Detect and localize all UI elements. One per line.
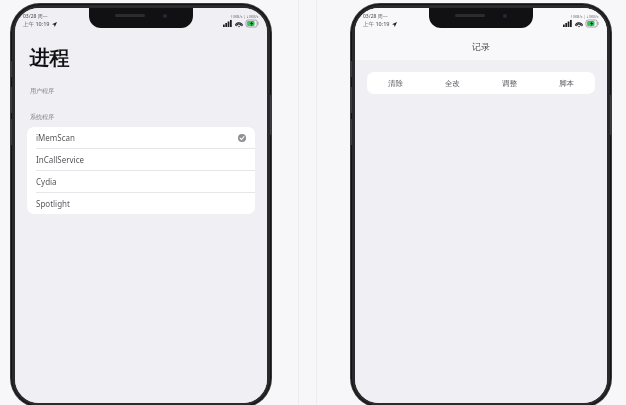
staticText: iMemScan [36,132,238,143]
staticText: 记录 [472,41,490,52]
staticText: 系统程序 [30,113,54,121]
staticText: 上午 10:19 [23,20,50,28]
button[interactable]: 脚本 [538,72,595,94]
staticText: 进程 [29,46,69,71]
staticText: Spotlight [36,198,246,209]
staticText: 03/28 周一 [363,13,388,20]
staticText: 全改 [445,79,460,88]
button[interactable]: 调整 [481,72,538,94]
staticText: ↑0KB/s | ↓0KB/s [570,14,599,19]
staticText: 用户程序 [30,87,54,95]
staticText: ↑0KB/s | ↓0KB/s [230,14,259,19]
staticText: 清除 [388,79,403,88]
button[interactable]: 清除 [367,72,424,94]
button[interactable]: Spotlight [27,193,255,214]
staticText: 上午 10:19 [363,20,390,28]
button[interactable]: 全改 [424,72,481,94]
button[interactable]: Cydia [27,171,255,193]
staticText: 03/28 周一 [23,13,48,20]
button[interactable]: InCallService [27,149,255,171]
staticText: Cydia [36,176,246,187]
staticText: 脚本 [559,79,574,88]
button[interactable]: iMemScan [27,127,255,149]
staticText: 调整 [502,79,517,88]
staticText: InCallService [36,154,246,165]
